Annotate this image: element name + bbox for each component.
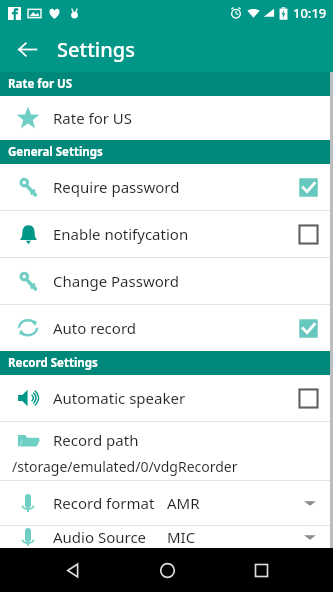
button[interactable]: Record path [0, 422, 333, 480]
button[interactable]: Checked [298, 177, 319, 198]
button[interactable]: Recent apps [239, 548, 283, 592]
staticText: 10:19 [293, 4, 327, 22]
staticText: Auto record [53, 318, 298, 338]
staticText: Record path [53, 430, 139, 450]
button[interactable]: Audio Source [0, 526, 333, 548]
staticText: Record format [53, 493, 163, 513]
staticText: General Settings [8, 144, 103, 160]
staticText: Rate for US [8, 76, 73, 92]
button[interactable]: Rate for US [0, 96, 333, 140]
staticText: Automatic speaker [53, 388, 298, 408]
staticText: Audio Source [53, 527, 163, 547]
button[interactable]: Require password [0, 164, 333, 210]
staticText: MIC [167, 527, 303, 547]
button[interactable]: Enable notifycation [0, 211, 333, 257]
staticText: Require password [53, 177, 298, 197]
button[interactable]: Unchecked [298, 224, 319, 245]
button[interactable]: Checked [298, 318, 319, 339]
staticText: Enable notifycation [53, 224, 298, 244]
button[interactable]: Record format [0, 481, 333, 525]
button[interactable]: Home [145, 548, 189, 592]
button[interactable]: Change Password [0, 258, 333, 304]
staticText: /storage/emulated/0/vdgRecorder [12, 457, 238, 476]
button[interactable]: Auto record [0, 305, 333, 351]
button[interactable]: Unchecked [298, 388, 319, 409]
button[interactable]: Back [8, 30, 46, 68]
staticText: Settings [57, 36, 135, 63]
staticText: Record Settings [8, 355, 98, 371]
staticText: Rate for US [53, 108, 333, 128]
staticText: AMR [167, 493, 303, 513]
button[interactable]: Automatic speaker [0, 375, 333, 421]
staticText: Change Password [53, 271, 333, 291]
button[interactable]: Back [50, 548, 94, 592]
